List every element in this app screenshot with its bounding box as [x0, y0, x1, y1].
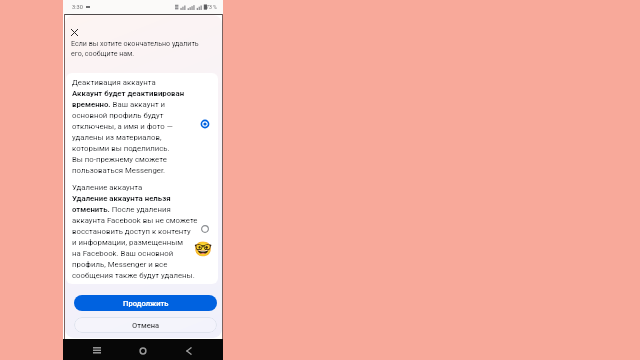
button[interactable]: Отмена: [74, 317, 217, 333]
button[interactable]: Close: [67, 25, 82, 40]
button[interactable]: Продолжить: [74, 295, 217, 311]
button[interactable]: Back: [181, 343, 196, 358]
button[interactable]: Home: [135, 343, 150, 358]
staticText: 73 %: [206, 4, 217, 10]
button[interactable]: Selected option: [198, 117, 212, 131]
staticText: Если вы хотите окончательно удалить его,…: [71, 39, 199, 57]
staticText: Отмена: [132, 321, 160, 330]
staticText: Удаление аккаунта Удаление аккаунта нель…: [72, 183, 198, 279]
staticText: 🤓: [194, 240, 213, 257]
staticText: 3:30: [72, 4, 83, 11]
button[interactable]: Option: [198, 222, 212, 236]
staticText: Продолжить: [123, 299, 169, 308]
staticText: Деактивация аккаунта Аккаунт будет деакт…: [72, 78, 185, 174]
button[interactable]: Recent apps: [89, 343, 104, 358]
